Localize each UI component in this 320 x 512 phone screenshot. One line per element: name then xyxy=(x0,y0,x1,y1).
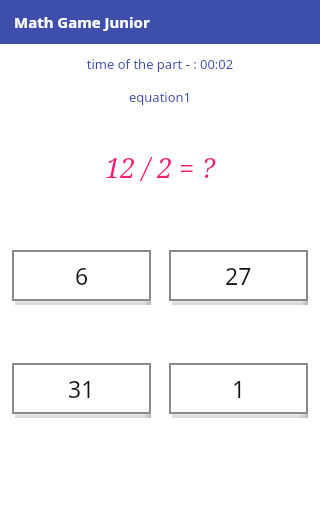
button[interactable]: 6 xyxy=(12,250,151,301)
staticText: 12 / 2 = ? xyxy=(0,149,320,186)
button[interactable]: 1 xyxy=(169,363,308,414)
staticText: equation1 xyxy=(0,88,320,106)
staticText: Math Game Junior xyxy=(14,12,150,32)
button[interactable]: 27 xyxy=(169,250,308,301)
staticText: 1 xyxy=(232,373,246,404)
staticText: 31 xyxy=(68,373,95,404)
staticText: time of the part - : 00:02 xyxy=(0,55,320,73)
staticText: 6 xyxy=(75,260,89,291)
staticText: 27 xyxy=(225,260,252,291)
button[interactable]: 31 xyxy=(12,363,151,414)
